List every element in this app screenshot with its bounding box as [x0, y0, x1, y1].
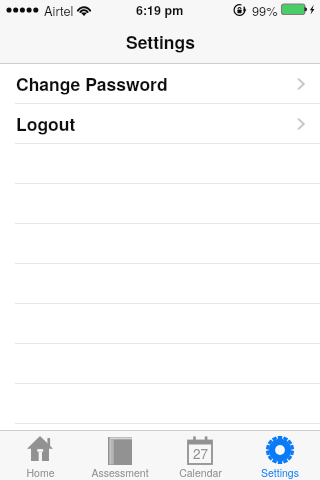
- other: Assessment: [105, 435, 135, 465]
- staticText: Settings: [126, 29, 195, 54]
- button[interactable]: Settings: [240, 430, 320, 480]
- button[interactable]: Calendar: [160, 430, 240, 480]
- staticText: 99%: [252, 1, 278, 19]
- staticText: Airtel: [44, 1, 74, 19]
- other: Open Logout: [294, 117, 308, 131]
- button[interactable]: Home: [0, 430, 80, 480]
- staticText: Calendar: [179, 465, 222, 480]
- staticText: Logout: [16, 111, 76, 136]
- button[interactable]: Assessment: [80, 430, 160, 480]
- other: Calendar: [185, 435, 215, 465]
- staticText: 6:19 pm: [136, 1, 184, 19]
- other: Home: [25, 435, 55, 465]
- other: Settings: [265, 435, 295, 465]
- staticText: 27: [193, 444, 209, 463]
- staticText: Settings: [261, 465, 299, 480]
- other: Open Change Password: [294, 77, 308, 91]
- staticText: Change Password: [16, 71, 168, 96]
- button[interactable]: Logout: [0, 104, 320, 144]
- staticText: Home: [26, 465, 55, 480]
- staticText: Assessment: [91, 465, 149, 480]
- button[interactable]: Change Password: [0, 64, 320, 104]
